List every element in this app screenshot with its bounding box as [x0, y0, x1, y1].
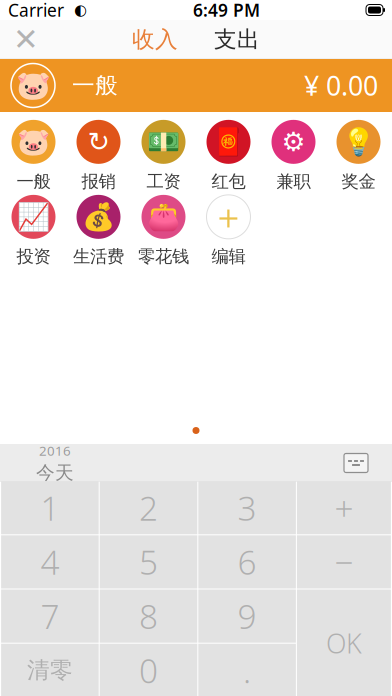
- button[interactable]: 6: [198, 535, 296, 588]
- staticText: 3: [238, 486, 257, 530]
- staticText: 收入: [132, 26, 178, 53]
- button[interactable]: 2: [100, 481, 197, 534]
- button[interactable]: Hide keyboard: [334, 444, 378, 482]
- button[interactable]: 💵: [131, 120, 196, 192]
- staticText: 👛: [147, 202, 180, 232]
- staticText: 2: [139, 486, 158, 530]
- staticText: 一般: [72, 72, 118, 99]
- staticText: +: [334, 486, 353, 530]
- staticText: Carrier: [8, 0, 64, 21]
- staticText: 7: [40, 594, 59, 638]
- button[interactable]: ＋: [196, 195, 261, 267]
- staticText: 🧧: [212, 127, 245, 157]
- staticText: 8: [139, 594, 158, 638]
- button[interactable]: 7: [1, 589, 99, 643]
- staticText: 工资: [146, 171, 180, 192]
- staticText: 一般: [16, 171, 50, 192]
- button[interactable]: 5: [100, 535, 197, 588]
- button[interactable]: 👛: [131, 195, 196, 267]
- staticText: 红包: [211, 171, 245, 192]
- staticText: ✕: [13, 22, 39, 57]
- staticText: 4: [40, 540, 59, 584]
- button[interactable]: +: [297, 481, 391, 534]
- staticText: 1: [40, 486, 59, 530]
- button[interactable]: OK: [297, 589, 391, 696]
- button[interactable]: 8: [100, 589, 197, 643]
- staticText: 🐷: [17, 127, 50, 157]
- staticText: ⚙: [281, 127, 305, 157]
- button[interactable]: Close: [0, 20, 52, 59]
- staticText: 9: [238, 594, 257, 638]
- staticText: 编辑: [211, 246, 245, 267]
- staticText: 0: [139, 648, 158, 692]
- button[interactable]: 4: [1, 535, 99, 588]
- button[interactable]: 🧧: [196, 120, 261, 192]
- button[interactable]: 清零: [1, 644, 99, 696]
- staticText: ¥ 0.00: [304, 68, 378, 103]
- staticText: ＋: [211, 196, 246, 238]
- staticText: 支出: [214, 26, 260, 53]
- staticText: 6: [238, 540, 257, 584]
- button[interactable]: ↻: [66, 120, 131, 192]
- button[interactable]: 🐷: [1, 120, 66, 192]
- button[interactable]: 9: [198, 589, 296, 643]
- staticText: 今天: [36, 461, 74, 484]
- button[interactable]: 💡: [326, 120, 391, 192]
- staticText: 零花钱: [138, 246, 189, 267]
- staticText: .: [243, 648, 251, 692]
- button[interactable]: ⚙: [261, 120, 326, 192]
- staticText: −: [334, 540, 353, 584]
- staticText: 💰: [82, 202, 115, 232]
- button[interactable]: −: [297, 535, 391, 588]
- staticText: 💵: [147, 127, 180, 157]
- staticText: 5: [139, 540, 158, 584]
- button[interactable]: 3: [198, 481, 296, 534]
- staticText: 奖金: [341, 171, 375, 192]
- staticText: ◐: [64, 2, 87, 18]
- staticText: 📈: [17, 202, 50, 232]
- staticText: 💡: [342, 127, 375, 157]
- staticText: 报销: [81, 171, 115, 192]
- staticText: 6:49 PM: [193, 0, 260, 21]
- button[interactable]: 📈: [1, 195, 66, 267]
- staticText: ↻: [87, 127, 109, 157]
- staticText: 清零: [27, 656, 73, 684]
- button[interactable]: 支出: [211, 20, 263, 59]
- button[interactable]: 🐷: [0, 59, 392, 112]
- button[interactable]: 0: [100, 644, 197, 696]
- button[interactable]: 收入: [129, 20, 181, 59]
- staticText: 🐷: [15, 69, 50, 101]
- button[interactable]: 1: [1, 481, 99, 534]
- staticText: 生活费: [73, 246, 124, 267]
- staticText: OK: [326, 625, 362, 661]
- staticText: 兼职: [276, 171, 310, 192]
- button[interactable]: 💰: [66, 195, 131, 267]
- staticText: 2016: [39, 442, 71, 459]
- staticText: 投资: [16, 246, 50, 267]
